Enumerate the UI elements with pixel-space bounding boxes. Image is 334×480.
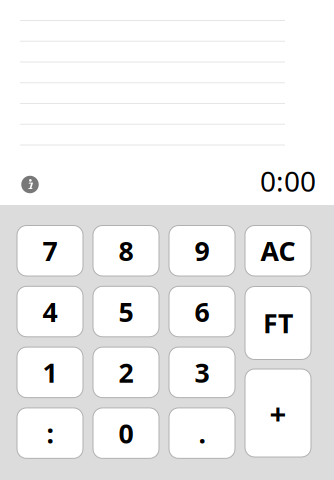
button[interactable]: 6 xyxy=(169,286,235,337)
button[interactable]: 7 xyxy=(17,225,83,276)
staticText: + xyxy=(269,393,286,432)
staticText: 8 xyxy=(118,233,133,268)
button[interactable]: 0 xyxy=(93,408,159,458)
staticText: 3 xyxy=(194,355,209,390)
staticText: 1 xyxy=(42,355,57,390)
button[interactable]: 1 xyxy=(17,347,83,398)
staticText: 2 xyxy=(118,355,133,390)
button[interactable]: . xyxy=(169,408,235,458)
staticText: 6 xyxy=(194,294,209,329)
staticText: 9 xyxy=(194,233,209,268)
button[interactable]: 9 xyxy=(169,225,235,276)
staticText: AC xyxy=(260,233,295,268)
staticText: . xyxy=(198,415,205,451)
button[interactable]: 8 xyxy=(93,225,159,276)
button[interactable]: FT xyxy=(245,286,311,359)
button[interactable]: 5 xyxy=(93,286,159,337)
button[interactable]: 3 xyxy=(169,347,235,398)
button[interactable]: 2 xyxy=(93,347,159,398)
staticText: 4 xyxy=(42,294,57,329)
button[interactable]: Info xyxy=(19,173,41,195)
staticText: 0:00 xyxy=(260,162,316,200)
staticText: 5 xyxy=(118,294,133,329)
button[interactable]: 4 xyxy=(17,286,83,337)
staticText: : xyxy=(46,415,53,451)
staticText: 0 xyxy=(118,415,133,451)
staticText: FT xyxy=(263,305,293,341)
button[interactable]: AC xyxy=(245,225,311,276)
button[interactable]: + xyxy=(245,369,311,457)
button[interactable]: : xyxy=(17,408,83,458)
staticText: 7 xyxy=(42,233,57,268)
